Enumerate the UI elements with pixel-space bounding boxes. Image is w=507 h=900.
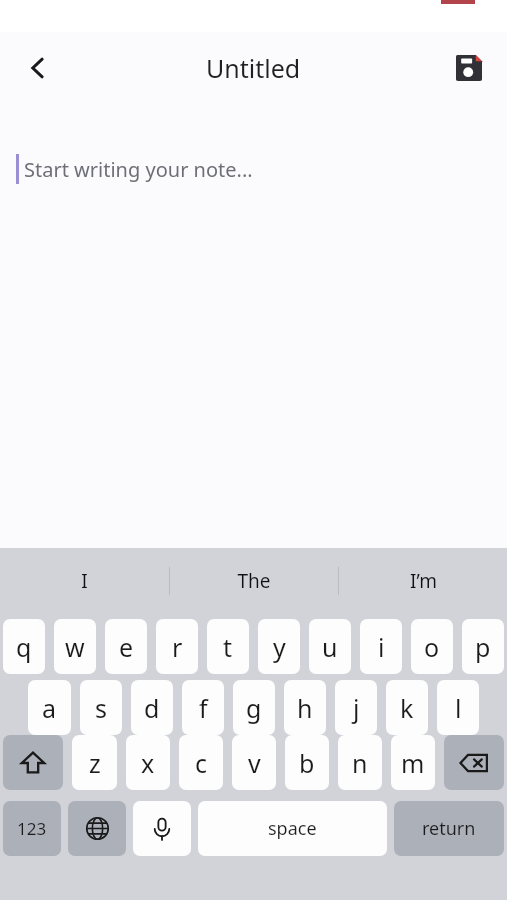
staticText: x — [141, 746, 155, 780]
button[interactable]: return — [394, 801, 504, 856]
staticText: i — [378, 630, 385, 664]
button[interactable]: Back — [12, 42, 64, 94]
staticText: d — [144, 691, 160, 725]
button[interactable]: Voice input — [133, 801, 191, 856]
button[interactable]: j — [335, 680, 377, 735]
button[interactable]: f — [182, 680, 224, 735]
staticText: b — [299, 746, 315, 780]
button[interactable]: b — [285, 735, 329, 790]
button[interactable]: l — [437, 680, 479, 735]
staticText: return — [422, 816, 476, 841]
staticText: The — [237, 568, 271, 594]
staticText: g — [246, 691, 262, 725]
button[interactable]: d — [131, 680, 173, 735]
staticText: I — [81, 568, 88, 594]
staticText: m — [401, 746, 425, 780]
staticText: a — [42, 691, 57, 725]
staticText: Start writing your note... — [24, 156, 253, 183]
button[interactable]: I’m — [339, 548, 507, 614]
staticText: u — [322, 630, 338, 664]
button[interactable]: i — [360, 619, 402, 674]
staticText: y — [273, 630, 286, 664]
button[interactable]: w — [54, 619, 96, 674]
button[interactable]: x — [126, 735, 170, 790]
button[interactable]: I — [0, 548, 169, 614]
button[interactable]: v — [232, 735, 276, 790]
button[interactable]: y — [258, 619, 300, 674]
button[interactable]: s — [80, 680, 122, 735]
staticText: f — [199, 691, 208, 725]
button[interactable]: Change keyboard — [68, 801, 126, 856]
staticText: I’m — [410, 568, 437, 594]
button[interactable]: Shift — [3, 735, 63, 790]
button[interactable]: z — [72, 735, 117, 790]
button[interactable]: Start writing your note... — [0, 104, 507, 548]
button[interactable]: The — [170, 548, 338, 614]
button[interactable]: m — [391, 735, 435, 790]
button[interactable]: g — [233, 680, 275, 735]
staticText: e — [119, 630, 134, 664]
staticText: v — [248, 746, 261, 780]
button[interactable]: p — [462, 619, 504, 674]
button[interactable]: Backspace — [444, 735, 504, 790]
button[interactable]: space — [198, 801, 387, 856]
staticText: 123 — [17, 817, 47, 840]
staticText: r — [172, 630, 183, 664]
staticText: z — [89, 746, 101, 780]
button[interactable]: Save — [445, 44, 493, 92]
button[interactable]: u — [309, 619, 351, 674]
staticText: j — [353, 691, 360, 725]
staticText: q — [16, 630, 32, 664]
staticText: s — [95, 691, 107, 725]
staticText: space — [268, 816, 317, 841]
button[interactable]: e — [105, 619, 147, 674]
button[interactable]: q — [3, 619, 45, 674]
button[interactable]: r — [156, 619, 198, 674]
staticText: c — [195, 746, 208, 780]
button[interactable]: Numbers — [3, 801, 61, 856]
button[interactable]: t — [207, 619, 249, 674]
staticText: k — [400, 691, 414, 725]
staticText: n — [352, 746, 368, 780]
staticText: Untitled — [206, 51, 301, 85]
button[interactable]: a — [28, 680, 71, 735]
staticText: w — [65, 630, 85, 664]
button[interactable]: n — [338, 735, 382, 790]
staticText: h — [297, 691, 313, 725]
button[interactable]: k — [386, 680, 428, 735]
button[interactable]: o — [411, 619, 453, 674]
staticText: t — [223, 630, 233, 664]
button[interactable]: c — [179, 735, 223, 790]
button[interactable]: h — [284, 680, 326, 735]
staticText: l — [455, 691, 462, 725]
staticText: p — [475, 630, 491, 664]
staticText: o — [424, 630, 440, 664]
